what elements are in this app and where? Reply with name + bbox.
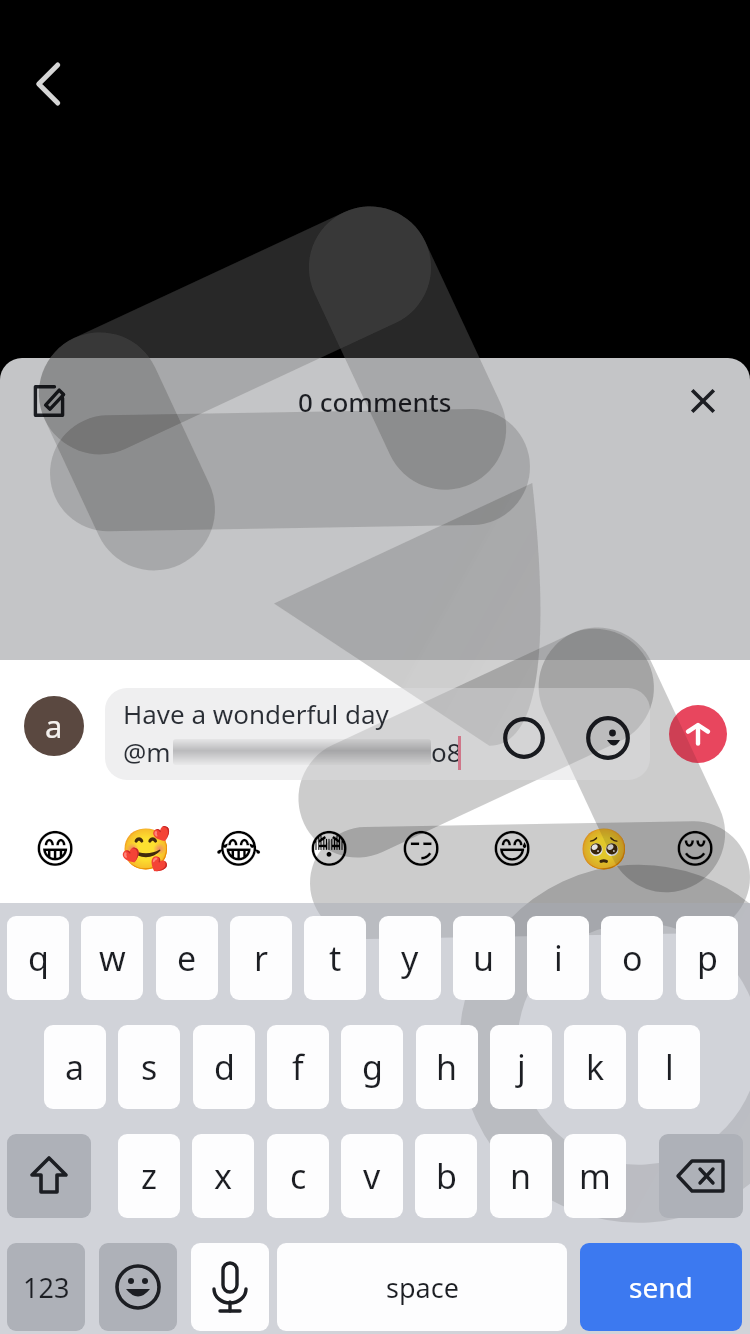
staticText: b: [436, 1153, 457, 1199]
staticText: t: [329, 935, 342, 981]
button[interactable]: 😌: [658, 812, 732, 886]
button[interactable]: space: [277, 1243, 567, 1331]
staticText: j: [517, 1044, 526, 1090]
button[interactable]: t: [304, 916, 366, 1000]
button[interactable]: x: [192, 1134, 254, 1218]
staticText: n: [510, 1153, 532, 1199]
button[interactable]: h: [416, 1025, 478, 1109]
button[interactable]: c: [267, 1134, 329, 1218]
staticText: 🥺: [579, 826, 629, 873]
button[interactable]: f: [267, 1025, 329, 1109]
staticText: a: [65, 1044, 85, 1090]
button[interactable]: j: [490, 1025, 552, 1109]
staticText: 😌: [674, 826, 716, 873]
button[interactable]: u: [453, 916, 515, 1000]
button[interactable]: e: [156, 916, 218, 1000]
button[interactable]: 😅: [475, 812, 549, 886]
staticText: y: [401, 935, 419, 981]
staticText: h: [436, 1044, 458, 1090]
button[interactable]: z: [118, 1134, 180, 1218]
staticText: w: [99, 935, 126, 981]
staticText: r: [254, 935, 269, 981]
staticText: i: [554, 935, 563, 981]
staticText: 😅: [491, 826, 533, 873]
staticText: p: [697, 935, 718, 981]
staticText: 😏: [400, 826, 442, 873]
staticText: Have a wonderful day: [123, 696, 389, 731]
button[interactable]: Close: [676, 374, 730, 428]
staticText: m: [579, 1153, 611, 1199]
staticText: e: [177, 935, 197, 981]
staticText: f: [292, 1044, 304, 1090]
button[interactable]: 😁: [18, 812, 92, 886]
button[interactable]: Post comment: [669, 705, 727, 763]
staticText: v: [363, 1153, 381, 1199]
staticText: 123: [23, 1269, 70, 1306]
staticText: 😂: [215, 826, 262, 873]
button[interactable]: w: [81, 916, 143, 1000]
button[interactable]: q: [7, 916, 69, 1000]
button[interactable]: o: [601, 916, 663, 1000]
button[interactable]: b: [415, 1134, 477, 1218]
staticText: o: [622, 935, 643, 981]
staticText: q: [28, 935, 49, 981]
staticText: send: [629, 1268, 693, 1306]
staticText: l: [665, 1044, 674, 1090]
button[interactable]: Have a wonderful day: [105, 688, 650, 780]
button[interactable]: Emoji: [581, 711, 635, 765]
staticText: space: [386, 1269, 459, 1306]
button[interactable]: Shift: [7, 1134, 91, 1218]
button[interactable]: Emoji keyboard: [99, 1243, 177, 1331]
button[interactable]: 🥰: [109, 812, 183, 886]
button[interactable]: Write a comment: [22, 374, 76, 428]
button[interactable]: 😳: [292, 812, 366, 886]
button[interactable]: Back: [14, 53, 76, 115]
button[interactable]: Backspace: [659, 1134, 743, 1218]
button[interactable]: d: [193, 1025, 255, 1109]
button[interactable]: v: [341, 1134, 403, 1218]
staticText: s: [141, 1044, 158, 1090]
staticText: d: [214, 1044, 235, 1090]
button[interactable]: n: [490, 1134, 552, 1218]
button[interactable]: k: [564, 1025, 626, 1109]
staticText: x: [214, 1153, 232, 1199]
button[interactable]: a: [24, 696, 84, 756]
button[interactable]: i: [527, 916, 589, 1000]
button[interactable]: 😂: [201, 812, 275, 886]
button[interactable]: y: [379, 916, 441, 1000]
staticText: 0 comments: [298, 384, 452, 419]
button[interactable]: a: [44, 1025, 106, 1109]
button[interactable]: s: [118, 1025, 180, 1109]
staticText: 😳: [308, 826, 350, 873]
button[interactable]: p: [676, 916, 738, 1000]
button[interactable]: Voice input: [191, 1243, 269, 1331]
button[interactable]: 🥺: [567, 812, 641, 886]
staticText: 😁: [34, 826, 76, 873]
button[interactable]: r: [230, 916, 292, 1000]
button[interactable]: 123: [7, 1243, 85, 1331]
staticText: c: [290, 1153, 307, 1199]
button[interactable]: send: [580, 1243, 742, 1331]
button[interactable]: g: [341, 1025, 403, 1109]
staticText: a: [45, 705, 63, 747]
staticText: z: [141, 1153, 157, 1199]
staticText: 🥰: [121, 826, 171, 873]
staticText: @m: [123, 734, 171, 769]
staticText: k: [586, 1044, 605, 1090]
button[interactable]: GIF: [497, 711, 551, 765]
button[interactable]: 😏: [384, 812, 458, 886]
button[interactable]: m: [564, 1134, 626, 1218]
staticText: o8: [431, 734, 462, 769]
staticText: u: [473, 935, 495, 981]
staticText: g: [362, 1044, 383, 1090]
button[interactable]: l: [638, 1025, 700, 1109]
